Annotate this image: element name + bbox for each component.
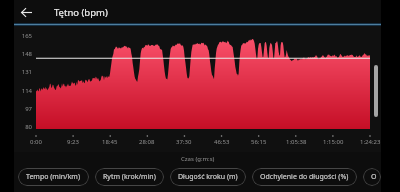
staticText: 56:15 — [251, 138, 267, 146]
staticText: Długość kroku (m) — [178, 172, 238, 182]
staticText: Oscylacja pionowa (cm) — [371, 172, 373, 182]
staticText: 1:24:23 — [360, 138, 381, 146]
staticText: 131 — [21, 68, 32, 76]
staticText: Czas (g:m:s) — [181, 155, 215, 163]
staticText: 37:30 — [176, 138, 192, 146]
staticText: 114 — [21, 87, 32, 95]
staticText: Tętno (bpm) — [54, 6, 108, 19]
staticText: 0:00 — [30, 138, 42, 146]
staticText: 9:23 — [67, 138, 79, 146]
staticText: Tempo (min/km) — [26, 172, 81, 182]
staticText: 28:08 — [139, 138, 155, 146]
button[interactable]: Rytm (krok/min) — [95, 168, 164, 186]
button[interactable]: Długość kroku (m) — [170, 168, 246, 186]
staticText: 80 — [25, 123, 32, 131]
staticText: 148 — [21, 50, 32, 58]
staticText: Odchylenie do długości (%) — [260, 172, 349, 182]
staticText: 46:53 — [214, 138, 230, 146]
button[interactable]: Odchylenie do długości (%) — [252, 168, 357, 186]
staticText: 165 — [21, 32, 32, 40]
staticText: Rytm (krok/min) — [103, 172, 156, 182]
button[interactable]: Oscylacja pionowa (cm) — [363, 168, 381, 186]
button[interactable]: Back — [14, 0, 38, 24]
staticText: 1:15:00 — [323, 138, 344, 146]
button[interactable]: Tempo (min/km) — [18, 168, 89, 186]
staticText: 18:45 — [102, 138, 118, 146]
staticText: 1:05:38 — [286, 138, 307, 146]
staticText: 97 — [25, 105, 32, 113]
